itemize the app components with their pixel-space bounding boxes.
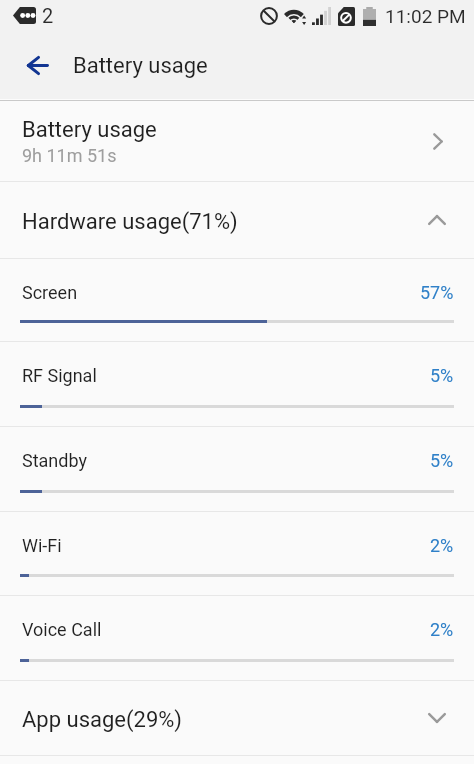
button[interactable]: RF Signal: [0, 342, 474, 427]
button[interactable]: Hardware usage(71%): [0, 182, 474, 259]
staticText: 2: [42, 4, 54, 27]
staticText: 2%: [430, 535, 454, 556]
staticText: RF Signal: [22, 365, 430, 386]
button[interactable]: Battery usage: [0, 101, 474, 182]
staticText: 5%: [430, 365, 454, 386]
staticText: 5%: [430, 450, 454, 471]
staticText: Battery usage: [73, 53, 208, 79]
button[interactable]: Back: [0, 29, 58, 101]
staticText: Screen: [22, 282, 420, 303]
staticText: Standby: [22, 450, 430, 471]
button[interactable]: Voice Call: [0, 596, 474, 681]
staticText: 9h 11m 51s: [22, 145, 117, 166]
staticText: Voice Call: [22, 619, 430, 640]
staticText: App usage(29%): [22, 707, 183, 733]
staticText: 57%: [420, 282, 454, 303]
staticText: 2%: [430, 619, 454, 640]
staticText: Wi-Fi: [22, 535, 430, 556]
staticText: 11:02 PM: [385, 5, 466, 27]
button[interactable]: App usage(29%): [0, 681, 474, 756]
staticText: Hardware usage(71%): [22, 209, 238, 235]
button[interactable]: Screen: [0, 259, 474, 342]
staticText: Battery usage: [22, 117, 157, 143]
button[interactable]: Standby: [0, 427, 474, 512]
button[interactable]: Wi-Fi: [0, 512, 474, 596]
